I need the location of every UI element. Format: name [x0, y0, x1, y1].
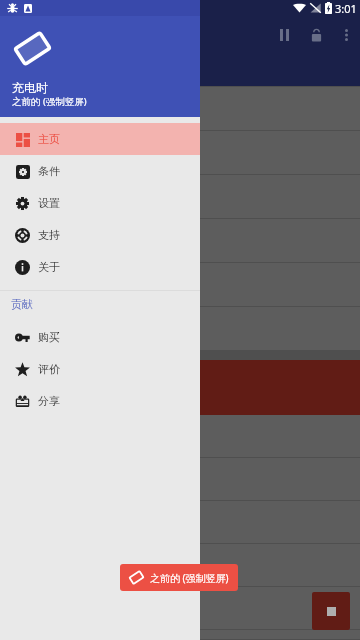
staticText: 分享	[38, 394, 60, 408]
button[interactable]: 评价	[0, 353, 200, 385]
button[interactable]	[0, 263, 360, 306]
button[interactable]	[0, 360, 360, 415]
button[interactable]: 支持	[0, 219, 200, 251]
button[interactable]: 关于	[0, 251, 200, 283]
staticText: 评价	[38, 362, 60, 376]
button[interactable]: 分享	[0, 385, 200, 417]
button[interactable]: 之前的 (强制竖屏)	[120, 564, 238, 591]
button[interactable]: 主页	[0, 123, 200, 155]
staticText: 贡献	[11, 297, 33, 311]
staticText: 条件	[38, 164, 60, 178]
staticText: 关于	[38, 260, 60, 274]
button[interactable]: More options	[332, 21, 360, 49]
button[interactable]	[0, 458, 360, 500]
button[interactable]	[0, 219, 360, 262]
button[interactable]: 购买	[0, 321, 200, 353]
button[interactable]: Pause	[268, 19, 300, 51]
staticText: 购买	[38, 330, 60, 344]
button[interactable]	[0, 131, 360, 174]
staticText: 主页	[38, 132, 60, 146]
button[interactable]	[0, 87, 360, 130]
button[interactable]: 设置	[0, 187, 200, 219]
staticText: 之前的 (强制竖屏)	[12, 95, 87, 108]
button[interactable]	[0, 501, 360, 543]
staticText: 支持	[38, 228, 60, 242]
button[interactable]	[0, 307, 360, 350]
staticText: 充电时	[12, 80, 48, 95]
button[interactable]: 条件	[0, 155, 200, 187]
button[interactable]: Stop	[312, 592, 350, 630]
staticText: 之前的 (强制竖屏)	[150, 571, 229, 585]
button[interactable]	[0, 587, 360, 629]
button[interactable]: Lock screen rotation	[300, 19, 332, 51]
button[interactable]	[0, 544, 360, 586]
staticText: 设置	[38, 196, 60, 210]
button[interactable]	[0, 630, 360, 639]
button[interactable]	[0, 175, 360, 218]
button[interactable]	[0, 415, 360, 457]
staticText: 3:01	[335, 1, 357, 16]
